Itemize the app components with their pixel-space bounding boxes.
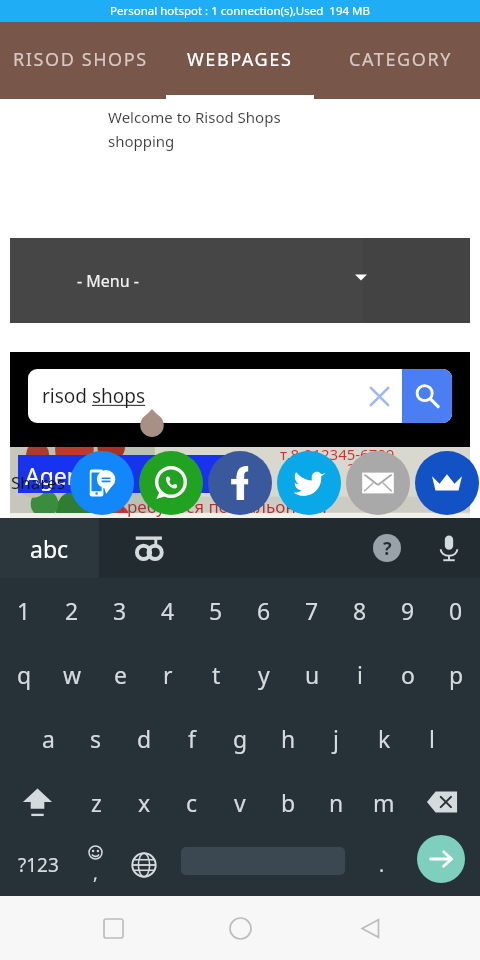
- staticText: Shares: [11, 471, 65, 494]
- button[interactable]: w: [48, 642, 96, 706]
- staticText: ?: [383, 536, 392, 561]
- staticText: 3: [113, 595, 127, 626]
- staticText: Welcome to Risod Shops shopping: [108, 107, 281, 151]
- staticText: Требуются почтальоны !!!: [118, 495, 327, 518]
- button[interactable]: CATEGORY: [320, 22, 480, 100]
- button[interactable]: y: [240, 642, 288, 706]
- staticText: l: [429, 723, 435, 754]
- button[interactable]: Send via SMS: [70, 451, 134, 515]
- button[interactable]: Home: [214, 902, 266, 954]
- staticText: z: [91, 787, 102, 818]
- staticText: CATEGORY: [349, 47, 452, 72]
- button[interactable]: 7: [288, 578, 336, 642]
- staticText: .: [379, 852, 385, 878]
- staticText: c: [186, 787, 198, 818]
- staticText: a: [42, 723, 55, 754]
- staticText: 5: [209, 595, 223, 626]
- button[interactable]: b: [264, 770, 312, 834]
- button[interactable]: o: [384, 642, 432, 706]
- button[interactable]: Clear search: [356, 373, 402, 419]
- button[interactable]: z: [72, 770, 120, 834]
- button[interactable]: 4: [144, 578, 192, 642]
- staticText: 9: [401, 595, 415, 626]
- button[interactable]: Enter: [417, 835, 465, 883]
- button[interactable]: Kannada layout: [99, 518, 199, 578]
- staticText: v: [234, 787, 246, 818]
- button[interactable]: g: [216, 706, 264, 770]
- button[interactable]: h: [264, 706, 312, 770]
- button[interactable]: 1: [0, 578, 48, 642]
- button[interactable]: 9: [384, 578, 432, 642]
- button[interactable]: c: [168, 770, 216, 834]
- button[interactable]: Share on WhatsApp: [139, 451, 203, 515]
- button[interactable]: abc: [0, 518, 99, 578]
- button[interactable]: u: [288, 642, 336, 706]
- staticText: p: [449, 659, 464, 690]
- button[interactable]: Help: [356, 518, 418, 578]
- button[interactable]: ?123: [5, 834, 71, 896]
- staticText: abc: [30, 533, 69, 564]
- button[interactable]: m: [360, 770, 408, 834]
- staticText: WEBPAGES: [187, 47, 293, 72]
- staticText: Agencies: [25, 460, 122, 491]
- button[interactable]: Voice input: [418, 518, 480, 578]
- button[interactable]: 0: [432, 578, 480, 642]
- button[interactable]: Backspace: [408, 770, 480, 834]
- button[interactable]: 2: [48, 578, 96, 642]
- staticText: т.8-912345-6789: [280, 447, 395, 464]
- staticText: q: [17, 659, 32, 690]
- button[interactable]: Share by email: [346, 451, 410, 515]
- button[interactable]: 5: [192, 578, 240, 642]
- button[interactable]: d: [120, 706, 168, 770]
- staticText: 2: [65, 595, 79, 626]
- staticText: e: [114, 659, 127, 690]
- button[interactable]: - Menu -: [10, 238, 470, 323]
- staticText: m: [373, 787, 395, 818]
- staticText: x: [138, 787, 151, 818]
- button[interactable]: WEBPAGES: [160, 22, 320, 100]
- staticText: 6: [257, 595, 271, 626]
- staticText: Personal hotspot : 1 connection(s),Used …: [110, 3, 370, 19]
- button[interactable]: k: [360, 706, 408, 770]
- button[interactable]: 3: [96, 578, 144, 642]
- staticText: s: [90, 723, 102, 754]
- button[interactable]: .: [358, 834, 406, 896]
- button[interactable]: v: [216, 770, 264, 834]
- staticText: 2724: [347, 458, 382, 478]
- button[interactable]: p: [432, 642, 480, 706]
- button[interactable]: Comma and emoji: [71, 834, 119, 896]
- staticText: u: [305, 659, 320, 690]
- staticText: o: [401, 659, 415, 690]
- button[interactable]: r: [144, 642, 192, 706]
- button[interactable]: 6: [240, 578, 288, 642]
- button[interactable]: a: [24, 706, 72, 770]
- staticText: risod: [42, 383, 92, 409]
- button[interactable]: RISOD SHOPS: [0, 22, 160, 100]
- staticText: i: [357, 659, 363, 690]
- button[interactable]: s: [72, 706, 120, 770]
- staticText: RISOD SHOPS: [13, 47, 148, 72]
- button[interactable]: Shift: [0, 770, 72, 834]
- button[interactable]: n: [312, 770, 360, 834]
- button[interactable]: Share on Facebook: [208, 451, 272, 515]
- button[interactable]: Share on Twitter: [277, 451, 341, 515]
- button[interactable]: q: [0, 642, 48, 706]
- button[interactable]: e: [96, 642, 144, 706]
- button[interactable]: i: [336, 642, 384, 706]
- staticText: r: [163, 659, 173, 690]
- staticText: n: [329, 787, 344, 818]
- button[interactable]: f: [168, 706, 216, 770]
- staticText: 1: [17, 595, 31, 626]
- button[interactable]: j: [312, 706, 360, 770]
- button[interactable]: Search: [402, 369, 452, 423]
- button[interactable]: 8: [336, 578, 384, 642]
- button[interactable]: More options: [415, 451, 479, 515]
- button[interactable]: t: [192, 642, 240, 706]
- button[interactable]: x: [120, 770, 168, 834]
- staticText: 8: [353, 595, 367, 626]
- button[interactable]: Back: [344, 902, 396, 954]
- button[interactable]: l: [408, 706, 456, 770]
- button[interactable]: Change language: [120, 834, 168, 896]
- button[interactable]: Recent apps: [87, 902, 139, 954]
